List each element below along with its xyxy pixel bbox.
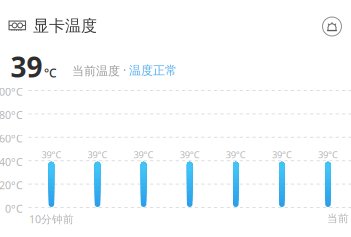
staticText: 10分钟前 — [29, 212, 74, 226]
staticText: 39°C — [41, 148, 61, 161]
staticText: 39°C — [226, 148, 246, 161]
staticText: 39°C — [180, 148, 200, 161]
staticText: 当前温度 · — [72, 62, 126, 78]
staticText: 显卡温度 — [33, 16, 97, 36]
button[interactable]: 温度报警 — [321, 15, 343, 37]
staticText: 39°C — [272, 148, 292, 161]
staticText: 当前 — [327, 212, 349, 225]
staticText: 60°C — [0, 131, 23, 145]
staticText: 100°C — [0, 84, 23, 99]
staticText: 温度正常 — [129, 63, 177, 78]
staticText: 80°C — [0, 108, 23, 122]
staticText: 39 — [10, 48, 42, 85]
staticText: °C — [44, 65, 57, 81]
staticText: 0°C — [5, 201, 23, 216]
staticText: 39°C — [318, 148, 338, 161]
staticText: 40°C — [0, 155, 23, 169]
staticText: 20°C — [0, 178, 23, 192]
staticText: 39°C — [134, 148, 154, 161]
staticText: 39°C — [87, 148, 107, 161]
